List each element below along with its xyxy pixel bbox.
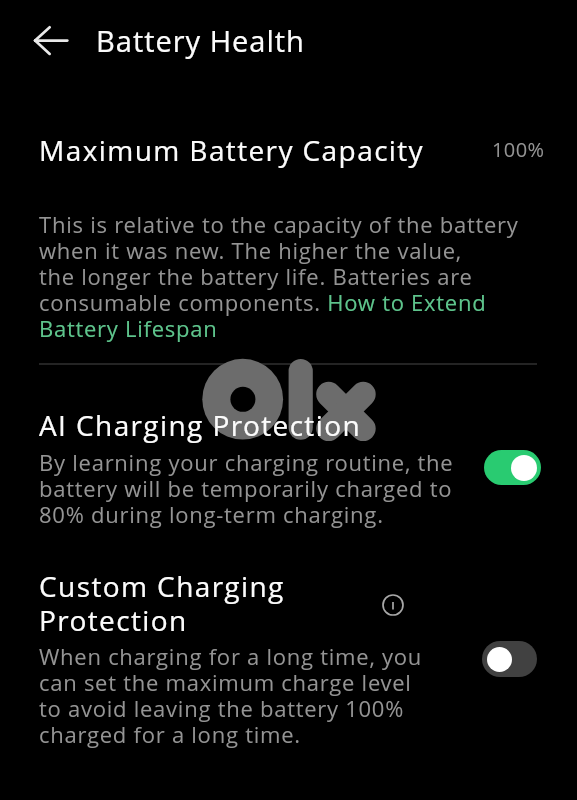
staticText: When charging for a long time, you can s…	[39, 641, 423, 749]
button[interactable]: Back	[16, 13, 86, 69]
button[interactable]: This is relative to the capacity of the …	[39, 209, 519, 343]
staticText: Custom Charging Protection	[39, 567, 285, 639]
staticText: By learning your charging routine, the b…	[39, 447, 454, 529]
staticText: Battery Health	[96, 21, 305, 60]
button[interactable]: AI Charging Protection switch, on	[484, 450, 541, 485]
button[interactable]: About custom charging protection	[377, 589, 408, 620]
button[interactable]: Custom Charging Protection switch, off	[482, 641, 537, 677]
staticText: AI Charging Protection	[39, 406, 362, 444]
staticText: Maximum Battery Capacity	[39, 131, 425, 169]
staticText: 100%	[492, 136, 545, 163]
button[interactable]	[0, 120, 577, 178]
